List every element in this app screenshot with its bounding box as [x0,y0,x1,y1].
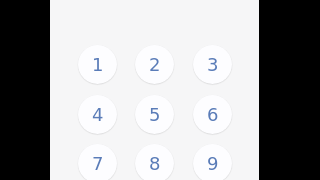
staticText: 8 [149,153,161,174]
staticText: 3 [207,54,219,75]
button[interactable]: 8 [135,144,174,180]
button[interactable]: 1 [78,45,117,84]
staticText: 4 [92,104,104,125]
staticText: 2 [149,54,161,75]
button[interactable]: 3 [193,45,232,84]
button[interactable]: 7 [78,144,117,180]
staticText: 9 [207,153,219,174]
staticText: 1 [92,54,104,75]
button[interactable]: 2 [135,45,174,84]
button[interactable]: 5 [135,95,174,134]
button[interactable]: 9 [193,144,232,180]
button[interactable]: 6 [193,95,232,134]
staticText: 7 [92,153,104,174]
button[interactable]: 4 [78,95,117,134]
staticText: 5 [149,104,161,125]
staticText: 6 [207,104,219,125]
